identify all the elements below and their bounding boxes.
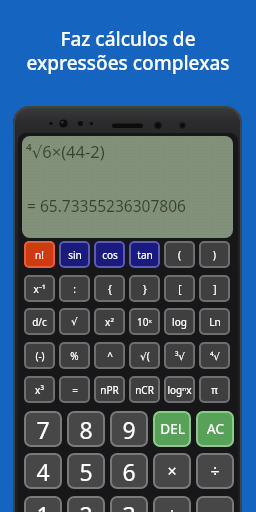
button[interactable]: [ — [164, 275, 195, 302]
staticText: √( — [140, 349, 150, 363]
button[interactable]: x² — [94, 308, 125, 335]
button[interactable]: - — [196, 496, 234, 512]
button[interactable]: ³√ — [164, 342, 195, 369]
button[interactable]: 8 — [67, 411, 105, 447]
button[interactable]: x⁻¹ — [24, 275, 55, 302]
button[interactable]: n! — [24, 241, 55, 268]
staticText: x³ — [35, 383, 44, 397]
button[interactable]: × — [153, 453, 191, 489]
staticText: ³√ — [175, 349, 185, 363]
button[interactable]: 2 — [67, 496, 105, 512]
staticText: ⁴√6×(44-2) — [26, 140, 105, 162]
button[interactable]: 10ˣ — [129, 308, 160, 335]
button[interactable]: 9 — [110, 411, 148, 447]
staticText: 1 — [36, 499, 50, 512]
staticText: : — [73, 282, 76, 296]
button[interactable]: DEL — [153, 411, 191, 447]
staticText: Faz cálculos de — [0, 26, 256, 50]
staticText: ⁴√ — [210, 349, 220, 363]
staticText: [ — [178, 282, 182, 296]
staticText: d/c — [32, 315, 47, 329]
button[interactable]: 6 — [110, 453, 148, 489]
staticText: 3 — [122, 499, 136, 512]
button[interactable]: ] — [199, 275, 230, 302]
button[interactable]: Ln — [199, 308, 230, 335]
button[interactable]: d/c — [24, 308, 55, 335]
staticText: ^ — [107, 349, 113, 363]
button[interactable]: π — [199, 376, 230, 403]
staticText: x⁻¹ — [33, 282, 46, 296]
staticText: cos — [102, 248, 118, 262]
staticText: 4 — [36, 456, 50, 487]
button[interactable]: 7 — [24, 411, 62, 447]
button[interactable]: } — [129, 275, 160, 302]
button[interactable]: 1 — [24, 496, 62, 512]
staticText: + — [167, 503, 177, 512]
staticText: tan — [137, 248, 153, 262]
button[interactable]: 3 — [110, 496, 148, 512]
button[interactable]: nPR — [94, 376, 125, 403]
button[interactable]: (-) — [24, 342, 55, 369]
button[interactable]: AC — [196, 411, 234, 447]
button[interactable]: log — [164, 308, 195, 335]
button[interactable]: 5 — [67, 453, 105, 489]
button[interactable]: ) — [199, 241, 230, 268]
staticText: expressões complexas — [0, 50, 256, 74]
staticText: { — [108, 282, 112, 296]
staticText: DEL — [160, 420, 185, 438]
button[interactable]: = — [59, 376, 90, 403]
staticText: AC — [207, 420, 224, 438]
staticText: = — [72, 383, 78, 397]
staticText: log — [172, 315, 187, 329]
staticText: nCR — [135, 383, 154, 397]
button[interactable]: tan — [129, 241, 160, 268]
button[interactable]: + — [153, 496, 191, 512]
button[interactable]: 4 — [24, 453, 62, 489]
staticText: 8 — [79, 414, 93, 445]
staticText: ) — [213, 248, 216, 262]
button[interactable]: sin — [59, 241, 90, 268]
staticText: x² — [105, 315, 114, 329]
staticText: ÷ — [210, 460, 220, 482]
button[interactable]: { — [94, 275, 125, 302]
button[interactable]: nCR — [129, 376, 160, 403]
staticText: Ln — [209, 315, 221, 329]
button[interactable]: logⁿx — [164, 376, 195, 403]
staticText: 7 — [36, 414, 50, 445]
staticText: n! — [35, 248, 44, 262]
staticText: nPR — [100, 383, 119, 397]
button[interactable]: √( — [129, 342, 160, 369]
staticText: sin — [68, 248, 82, 262]
button[interactable]: ^ — [94, 342, 125, 369]
button[interactable]: % — [59, 342, 90, 369]
staticText: } — [143, 282, 147, 296]
staticText: ] — [213, 282, 217, 296]
staticText: 5 — [79, 456, 93, 487]
button[interactable]: x³ — [24, 376, 55, 403]
staticText: π — [211, 383, 218, 397]
staticText: % — [70, 349, 79, 363]
staticText: × — [167, 460, 177, 482]
staticText: logⁿx — [167, 383, 192, 397]
button[interactable]: √ — [59, 308, 90, 335]
button[interactable]: : — [59, 275, 90, 302]
staticText: 9 — [122, 414, 136, 445]
staticText: 2 — [79, 499, 93, 512]
button[interactable]: ÷ — [196, 453, 234, 489]
button[interactable]: cos — [94, 241, 125, 268]
staticText: 10ˣ — [137, 315, 152, 329]
staticText: √ — [71, 316, 78, 328]
staticText: ( — [178, 248, 181, 262]
staticText: (-) — [35, 349, 45, 363]
staticText: = 65.73355236307806 — [27, 195, 186, 216]
button[interactable]: ⁴√ — [199, 342, 230, 369]
staticText: 6 — [122, 456, 136, 487]
button[interactable]: ( — [164, 241, 195, 268]
